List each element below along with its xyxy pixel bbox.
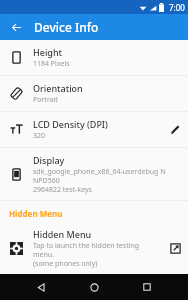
button[interactable]: Edit LCD density: [162, 124, 188, 135]
button[interactable]: Display: [0, 148, 188, 200]
staticText: 7:00: [169, 2, 185, 13]
staticText: 320: [33, 131, 46, 141]
staticText: Orientation: [33, 82, 83, 94]
staticText: Display: [33, 154, 65, 166]
staticText: Hidden Menu: [9, 208, 63, 219]
staticText: 1184 Pixels: [33, 59, 70, 69]
staticText: sdk_google_phone_x86_64-userdebug N NPD5…: [33, 167, 184, 194]
button[interactable]: Back: [29, 275, 53, 299]
button[interactable]: LCD Density (DPI): [0, 112, 188, 147]
staticText: LCD Density (DPI): [33, 118, 108, 130]
button[interactable]: Launch hidden menu: [162, 243, 188, 254]
button[interactable]: Height: [0, 40, 188, 75]
button[interactable]: Orientation: [0, 76, 188, 111]
staticText: Device Info: [34, 19, 99, 35]
button[interactable]: Back: [6, 17, 26, 37]
button[interactable]: Recent apps: [135, 275, 159, 299]
button[interactable]: Hidden Menu: [0, 222, 188, 274]
staticText: Hidden Menu: [33, 228, 92, 240]
staticText: Height: [33, 46, 62, 58]
staticText: Portrait: [33, 95, 58, 105]
staticText: Tap to launch the hidden testing menu. (…: [33, 241, 158, 268]
button[interactable]: Home: [82, 275, 106, 299]
